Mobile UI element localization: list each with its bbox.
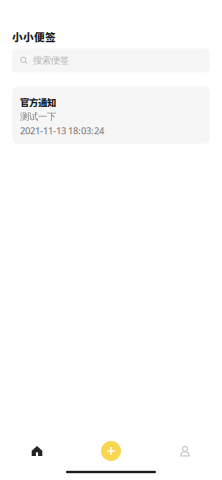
- button[interactable]: 官方通知: [12, 86, 210, 144]
- staticText: 小小便签: [12, 29, 56, 44]
- button[interactable]: Profile: [148, 440, 222, 462]
- button[interactable]: New note: [74, 440, 148, 462]
- staticText: 官方通知: [20, 95, 56, 109]
- button[interactable]: 搜索便签: [12, 48, 210, 72]
- staticText: 测试一下: [20, 111, 56, 122]
- staticText: 2021-11-13 18:03:24: [20, 124, 104, 137]
- staticText: 搜索便签: [33, 55, 69, 66]
- button[interactable]: Home: [0, 440, 74, 462]
